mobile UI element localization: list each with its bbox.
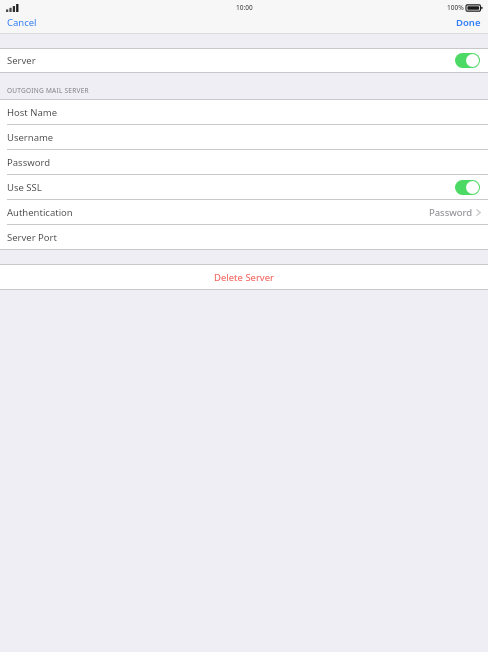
button[interactable]: Password: [0, 150, 488, 174]
staticText: Use SSL: [7, 181, 42, 194]
button[interactable]: Done: [449, 13, 488, 32]
staticText: Password: [7, 156, 50, 169]
button[interactable]: Use SSL: [0, 175, 488, 199]
button[interactable]: Server: [0, 49, 488, 72]
staticText: Password: [429, 206, 472, 219]
staticText: 10:00: [236, 3, 253, 12]
button[interactable]: Toggle on: [455, 180, 480, 195]
staticText: 100%: [447, 3, 464, 12]
button[interactable]: Authentication: [0, 200, 488, 224]
staticText: Authentication: [7, 206, 73, 219]
staticText: Done: [456, 16, 481, 29]
button[interactable]: Delete Server: [0, 265, 488, 289]
staticText: Server: [7, 54, 36, 67]
staticText: Server Port: [7, 231, 57, 244]
button[interactable]: Username: [0, 125, 488, 149]
button[interactable]: Cancel: [0, 13, 44, 32]
staticText: Username: [7, 131, 54, 144]
button[interactable]: Host Name: [0, 100, 488, 124]
button[interactable]: Toggle on: [455, 53, 480, 68]
staticText: Host Name: [7, 106, 58, 119]
staticText: OUTGOING MAIL SERVER: [7, 86, 89, 95]
staticText: Cancel: [7, 16, 37, 29]
staticText: Delete Server: [214, 271, 274, 284]
button[interactable]: Server Port: [0, 225, 488, 249]
